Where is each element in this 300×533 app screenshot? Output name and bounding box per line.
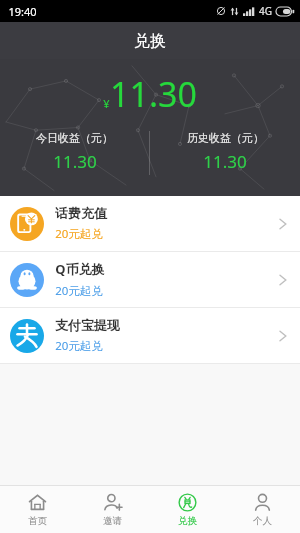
staticText: 11.30 bbox=[203, 150, 247, 173]
staticText: 11.30 bbox=[53, 150, 97, 173]
button[interactable]: 兑换 bbox=[150, 486, 225, 533]
staticText: 兑换 bbox=[178, 515, 197, 527]
staticText: 历史收益（元） bbox=[187, 131, 264, 145]
staticText: Q币兑换 bbox=[55, 260, 105, 278]
button[interactable]: 话费充值 bbox=[0, 196, 300, 251]
staticText: 个人 bbox=[253, 515, 272, 527]
button[interactable]: 首页 bbox=[0, 486, 75, 533]
staticText: 支付宝提现 bbox=[55, 317, 120, 333]
staticText: 首页 bbox=[28, 515, 47, 527]
button[interactable]: 支付宝提现 bbox=[0, 308, 300, 363]
staticText: 20元起兑 bbox=[55, 226, 103, 242]
staticText: 话费充值 bbox=[55, 205, 107, 221]
staticText: 邀请 bbox=[103, 515, 122, 527]
staticText: ¥ bbox=[103, 96, 110, 111]
staticText: 20元起兑 bbox=[55, 338, 103, 354]
staticText: 4G bbox=[259, 4, 272, 18]
button[interactable]: Q币兑换 bbox=[0, 252, 300, 307]
button[interactable]: 邀请 bbox=[75, 486, 150, 533]
staticText: 兑换 bbox=[134, 31, 166, 51]
staticText: 19:40 bbox=[8, 4, 37, 19]
staticText: 11.30 bbox=[110, 71, 197, 117]
staticText: 20元起兑 bbox=[55, 283, 103, 299]
staticText: 今日收益（元） bbox=[36, 131, 113, 145]
button[interactable]: 个人 bbox=[225, 486, 300, 533]
